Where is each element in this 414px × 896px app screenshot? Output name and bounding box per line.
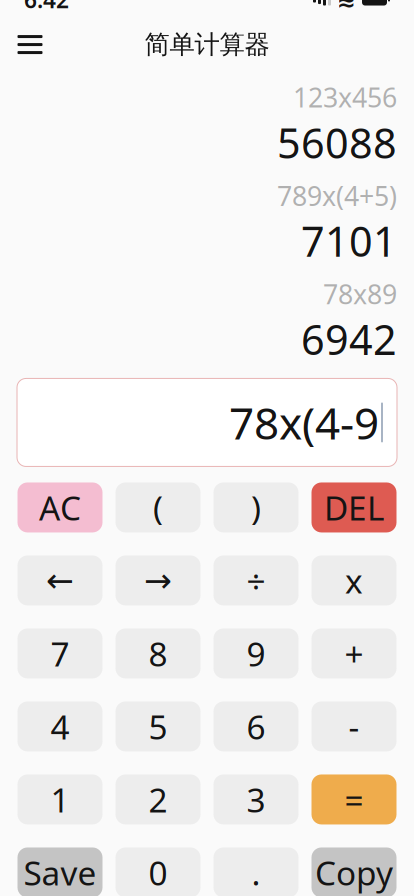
staticText: Save — [23, 850, 96, 895]
staticText: ← — [46, 561, 74, 599]
staticText: ) — [251, 485, 261, 530]
button[interactable]: 7 — [17, 628, 102, 678]
button[interactable]: 8 — [115, 628, 200, 678]
button[interactable]: Menu — [8, 22, 52, 66]
staticText: 8 — [148, 631, 167, 676]
button[interactable]: - — [311, 701, 396, 751]
staticText: → — [144, 561, 172, 599]
staticText: DEL — [324, 485, 384, 530]
button[interactable]: 2 — [115, 774, 200, 824]
staticText: 6:42 — [24, 0, 69, 15]
button[interactable]: ← — [17, 555, 102, 605]
staticText: . — [251, 850, 260, 895]
staticText: 5 — [148, 704, 167, 749]
button[interactable]: 0 — [115, 847, 200, 896]
button[interactable]: + — [311, 628, 396, 678]
staticText: ÷ — [246, 558, 265, 603]
staticText: 7101 — [301, 213, 397, 268]
staticText: - — [348, 704, 359, 749]
staticText: ≋ — [337, 0, 356, 12]
button[interactable]: = — [311, 774, 396, 824]
staticText: 789x(4+5) — [277, 178, 397, 213]
button[interactable]: 5 — [115, 701, 200, 751]
staticText: 3 — [246, 777, 265, 822]
staticText: 78x(4-9 — [229, 393, 379, 452]
staticText: + — [344, 631, 363, 676]
button[interactable]: 4 — [17, 701, 102, 751]
button[interactable]: DEL — [311, 482, 396, 532]
staticText: 0 — [148, 850, 167, 895]
staticText: 2 — [148, 777, 167, 822]
button[interactable]: Copy — [311, 847, 396, 896]
staticText: x — [345, 558, 363, 603]
button[interactable]: x — [311, 555, 396, 605]
staticText: 1 — [50, 777, 69, 822]
staticText: 56088 — [277, 115, 397, 170]
staticText: 9 — [246, 631, 265, 676]
staticText: = — [344, 777, 363, 822]
staticText: 78x89 — [323, 276, 397, 312]
staticText: 6942 — [301, 312, 397, 366]
staticText: 7 — [50, 631, 69, 676]
staticText: ( — [153, 485, 163, 530]
button[interactable]: 6 — [213, 701, 298, 751]
button[interactable]: 1 — [17, 774, 102, 824]
staticText: 6 — [246, 704, 265, 749]
button[interactable]: → — [115, 555, 200, 605]
button[interactable]: Save — [17, 847, 102, 896]
button[interactable]: 3 — [213, 774, 298, 824]
button[interactable]: ( — [115, 482, 200, 532]
staticText: 123x456 — [293, 79, 397, 115]
button[interactable]: 9 — [213, 628, 298, 678]
button[interactable]: ÷ — [213, 555, 298, 605]
staticText: 4 — [50, 704, 69, 749]
button[interactable]: ) — [213, 482, 298, 532]
button[interactable]: . — [213, 847, 298, 896]
staticText: Copy — [315, 850, 393, 895]
staticText: 简单计算器 — [144, 29, 269, 60]
staticText: AC — [39, 485, 81, 530]
button[interactable]: AC — [17, 482, 102, 532]
